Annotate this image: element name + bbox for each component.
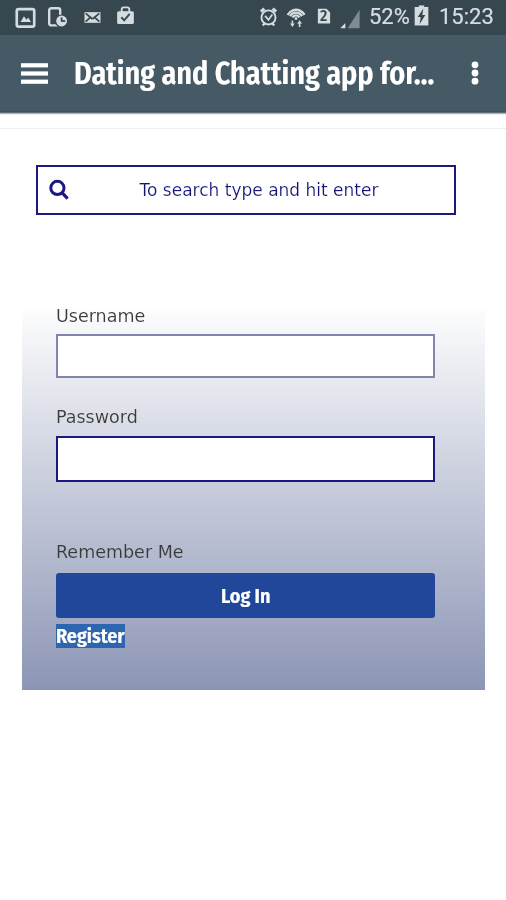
button[interactable]: To search type and hit enter (36, 165, 456, 215)
staticText: Username (56, 306, 146, 326)
button[interactable] (56, 334, 435, 378)
staticText: Register (56, 624, 125, 648)
staticText: Log In (221, 584, 271, 608)
button[interactable]: Open navigation menu (6, 45, 62, 101)
staticText: To search type and hit enter (80, 180, 438, 200)
staticText: 15:23 (439, 4, 494, 30)
button[interactable]: Register (56, 624, 125, 648)
button[interactable]: More options (447, 45, 503, 101)
staticText: Password (56, 407, 138, 427)
button[interactable] (56, 436, 435, 482)
button[interactable]: Log In (56, 573, 435, 618)
staticText: 2 (320, 6, 328, 25)
staticText: Remember Me (56, 542, 184, 562)
staticText: 52% (369, 4, 410, 30)
staticText: Dating and Chatting app for… (74, 56, 435, 92)
